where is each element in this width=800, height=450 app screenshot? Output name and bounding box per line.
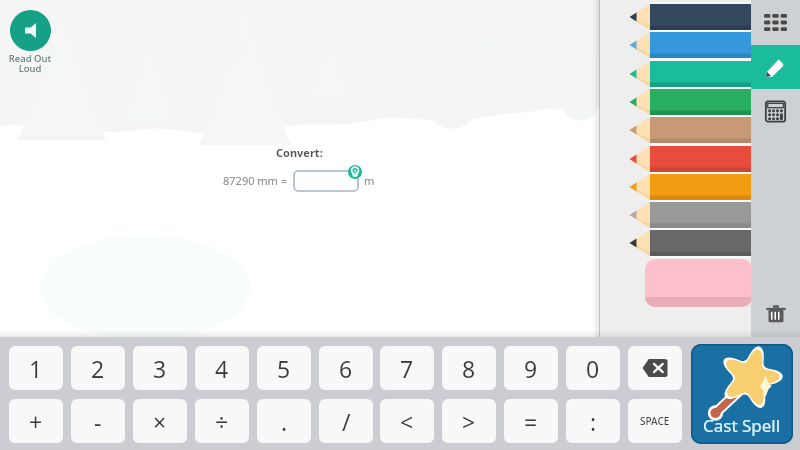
button[interactable]: >	[442, 399, 496, 443]
button[interactable]	[600, 117, 751, 143]
button[interactable]: +	[9, 399, 63, 443]
staticText: +	[29, 406, 43, 437]
staticText: 9	[524, 353, 538, 384]
staticText: 7	[400, 353, 414, 384]
staticText: .	[281, 406, 288, 437]
button[interactable]: Eraser	[645, 259, 752, 307]
button[interactable]: :	[566, 399, 620, 443]
staticText: 1	[29, 353, 43, 384]
staticText: -	[94, 406, 102, 437]
button[interactable]	[600, 230, 751, 256]
button[interactable]: ÷	[195, 399, 249, 443]
button[interactable]: Read Out Loud	[0, 10, 60, 74]
staticText: /	[342, 406, 351, 437]
staticText: :	[590, 406, 597, 437]
button[interactable]: <	[380, 399, 434, 443]
staticText: 4	[215, 353, 229, 384]
button[interactable]	[294, 171, 358, 191]
staticText: SPACE	[640, 414, 670, 428]
staticText: 0	[586, 353, 600, 384]
button[interactable]: .	[257, 399, 311, 443]
button[interactable]: Cast Spell	[691, 344, 793, 444]
button[interactable]: Backspace	[628, 346, 682, 390]
button[interactable]	[600, 61, 751, 87]
staticText: m	[364, 173, 375, 188]
button[interactable]: Hint	[348, 165, 362, 179]
button[interactable]: -	[71, 399, 125, 443]
staticText: Read Out Loud	[0, 52, 60, 75]
button[interactable]: Pencil	[751, 45, 800, 89]
button[interactable]: 9	[504, 346, 558, 390]
button[interactable]: ×	[133, 399, 187, 443]
button[interactable]: 6	[319, 346, 373, 390]
button[interactable]: =	[504, 399, 558, 443]
button[interactable]: SPACE	[628, 399, 682, 443]
staticText: =	[524, 406, 538, 437]
button[interactable]	[600, 4, 751, 30]
staticText: >	[462, 406, 476, 437]
button[interactable]: 2	[71, 346, 125, 390]
button[interactable]	[600, 202, 751, 228]
staticText: 6	[339, 353, 353, 384]
staticText: ×	[153, 406, 167, 437]
button[interactable]: /	[319, 399, 373, 443]
button[interactable]	[600, 32, 751, 58]
button[interactable]	[600, 89, 751, 115]
button[interactable]: Calculator	[751, 89, 800, 134]
staticText: 5	[277, 353, 291, 384]
button[interactable]: 8	[442, 346, 496, 390]
staticText: 3	[153, 353, 167, 384]
button[interactable]: 1	[9, 346, 63, 390]
staticText: 87290 mm =	[223, 173, 288, 188]
button[interactable]: 3	[133, 346, 187, 390]
button[interactable]	[600, 146, 751, 172]
staticText: Convert:	[276, 145, 323, 160]
staticText: 8	[462, 353, 476, 384]
button[interactable]: Delete	[751, 291, 800, 337]
button[interactable]: Apps	[751, 0, 800, 45]
button[interactable]: 7	[380, 346, 434, 390]
staticText: <	[400, 406, 414, 437]
staticText: ÷	[215, 406, 229, 437]
button[interactable]: 0	[566, 346, 620, 390]
button[interactable]: 4	[195, 346, 249, 390]
staticText: 2	[91, 353, 105, 384]
button[interactable]	[600, 174, 751, 200]
button[interactable]: 5	[257, 346, 311, 390]
staticText: Cast Spell	[703, 414, 781, 437]
